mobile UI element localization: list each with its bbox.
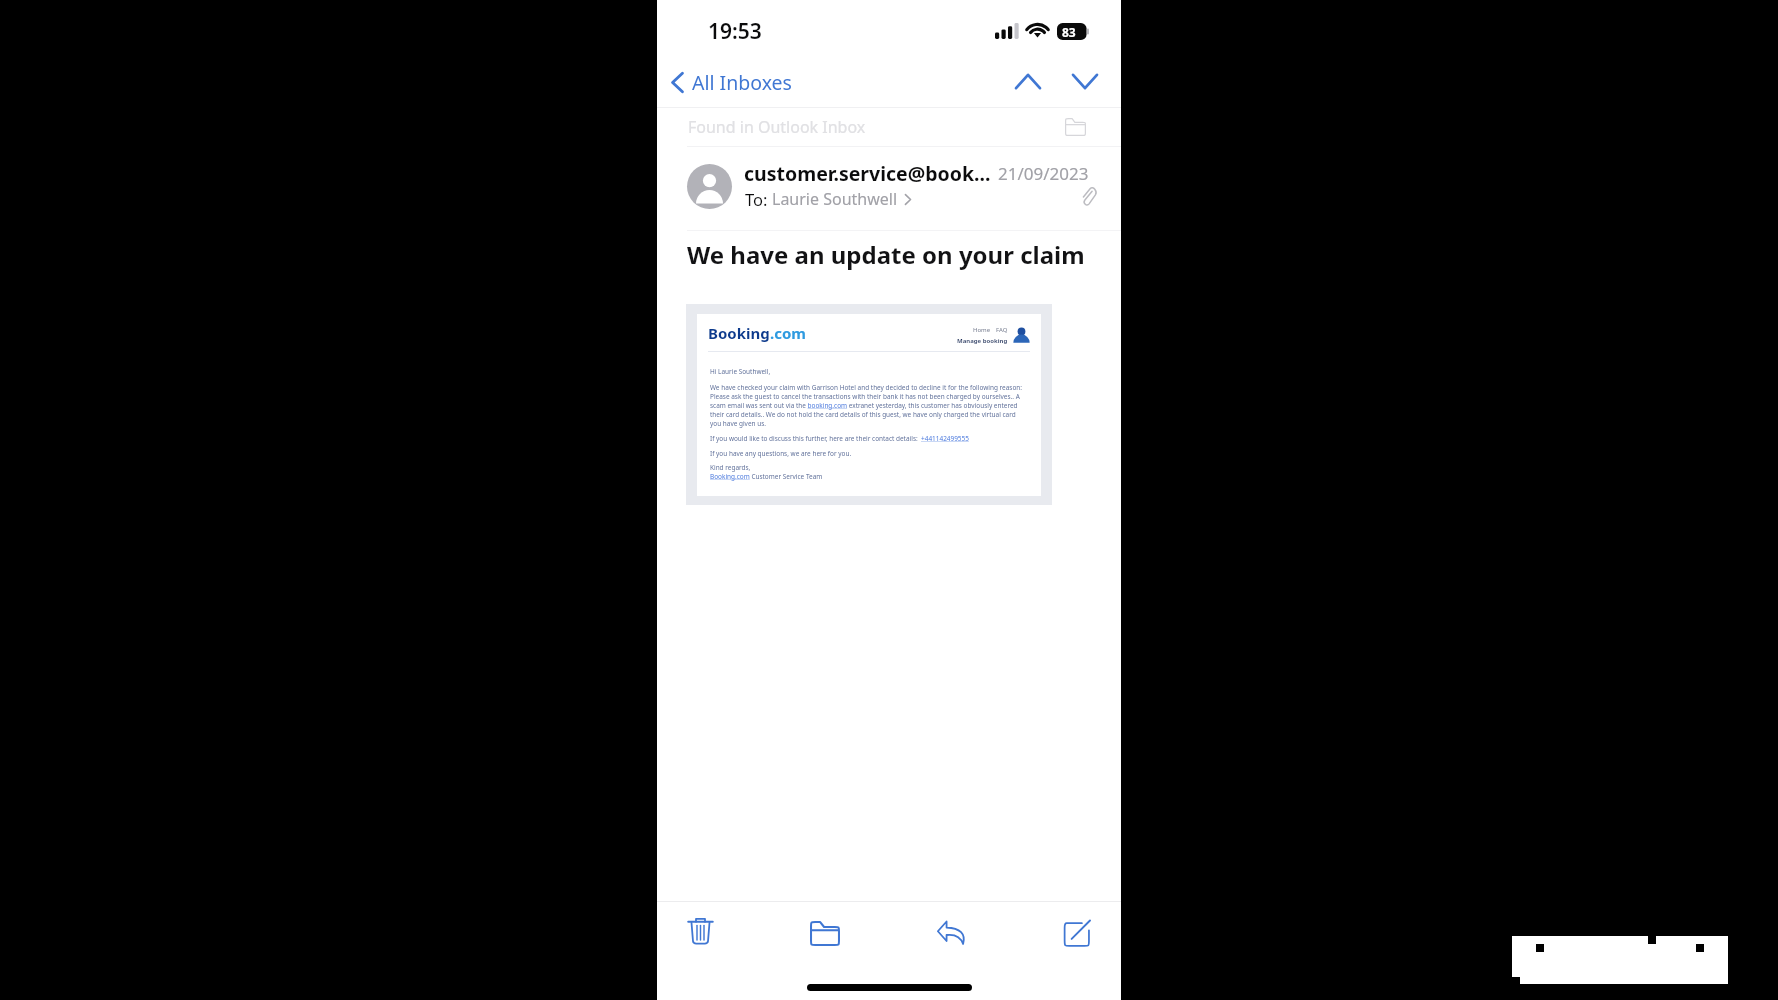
staticText: If you would like to discuss this furthe…: [710, 434, 969, 443]
staticText: All Inboxes: [692, 69, 792, 96]
staticText: Kind regards,: [710, 463, 751, 472]
button[interactable]: Compose: [1048, 902, 1104, 958]
button[interactable]: customer.service@book...: [657, 147, 1121, 230]
button[interactable]: Move to folder: [797, 902, 853, 958]
staticText: Manage booking: [957, 337, 1008, 345]
staticText: Found in Outlook Inbox: [688, 116, 866, 138]
staticText: We have checked your claim with Garrison…: [710, 383, 1022, 392]
staticText: 19:53: [708, 17, 762, 46]
staticText: We have an update on your claim: [687, 238, 1085, 271]
button[interactable]: Next message: [1059, 64, 1111, 99]
staticText: If you have any questions, we are here f…: [710, 449, 852, 458]
staticText: FAQ: [996, 326, 1008, 334]
staticText: Hi Laurie Southwell,: [710, 367, 771, 376]
button[interactable]: Delete: [672, 902, 728, 958]
staticText: customer.service@book...: [744, 160, 991, 187]
staticText: their card details.. We do not hold the …: [710, 410, 1016, 419]
staticText: To:: [745, 188, 772, 210]
staticText: Booking: [708, 323, 770, 343]
button[interactable]: Reply: [923, 902, 979, 958]
staticText: Laurie Southwell: [772, 188, 898, 210]
staticText: Home: [973, 326, 991, 334]
staticText: .com: [770, 323, 806, 343]
button[interactable]: All Inboxes: [657, 63, 802, 102]
staticText: scam email was sent out via the booking.…: [710, 401, 1018, 410]
button[interactable]: Previous message: [1002, 64, 1054, 99]
staticText: Booking.com Customer Service Team: [710, 472, 823, 481]
staticText: 83: [1062, 24, 1076, 40]
staticText: 21/09/2023: [998, 162, 1089, 185]
staticText: Please ask the guest to cancel the trans…: [710, 392, 1020, 401]
staticText: you have given us.: [710, 419, 766, 428]
button[interactable]: Found in Outlook Inbox: [657, 108, 1121, 146]
